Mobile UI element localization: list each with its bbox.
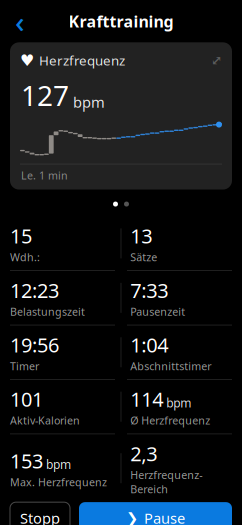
staticText: ‹ bbox=[15, 2, 25, 41]
staticText: Max. Herzfrequenz bbox=[10, 475, 107, 489]
staticText: ♥ bbox=[20, 51, 34, 69]
staticText: Herzfrequenz bbox=[39, 52, 125, 69]
staticText: 101 bbox=[10, 386, 43, 412]
staticText: 12:23 bbox=[10, 277, 59, 304]
staticText: bpm bbox=[46, 456, 71, 472]
staticText: 1:04 bbox=[130, 331, 168, 358]
staticText: 7:33 bbox=[130, 277, 168, 304]
staticText: bpm bbox=[166, 395, 191, 411]
button[interactable]: ♥ bbox=[10, 42, 232, 189]
staticText: Wdh.: bbox=[10, 250, 40, 264]
staticText: Timer bbox=[10, 359, 39, 373]
staticText: 19:56 bbox=[10, 331, 59, 358]
staticText: Belastungszeit bbox=[10, 304, 85, 319]
staticText: 13 bbox=[130, 223, 152, 249]
staticText: Abschnittstimer bbox=[130, 359, 211, 373]
staticText: Ø Herzfrequenz bbox=[130, 413, 210, 428]
staticText: Pausenzeit bbox=[130, 304, 185, 319]
button[interactable]: ❯ bbox=[79, 502, 232, 525]
staticText: 153 bbox=[10, 447, 43, 474]
staticText: 127 bbox=[21, 76, 69, 114]
staticText: Herzfrequenz-Bereich bbox=[130, 468, 202, 496]
staticText: Krafttraining bbox=[68, 11, 173, 32]
staticText: Stopp bbox=[20, 508, 60, 525]
staticText: 2,3 bbox=[130, 440, 157, 467]
staticText: 15 bbox=[10, 223, 32, 249]
staticText: Aktiv-Kalorien bbox=[10, 413, 80, 428]
staticText: Pause bbox=[144, 508, 185, 525]
staticText: ⤢ bbox=[211, 53, 222, 68]
staticText: Le. 1 min bbox=[21, 168, 68, 183]
staticText: bpm bbox=[73, 92, 105, 112]
button[interactable]: Stopp bbox=[10, 502, 70, 525]
staticText: 114 bbox=[130, 386, 163, 412]
staticText: ❯ bbox=[126, 510, 138, 525]
staticText: Sätze bbox=[130, 250, 157, 264]
button[interactable]: Back bbox=[5, 8, 35, 34]
